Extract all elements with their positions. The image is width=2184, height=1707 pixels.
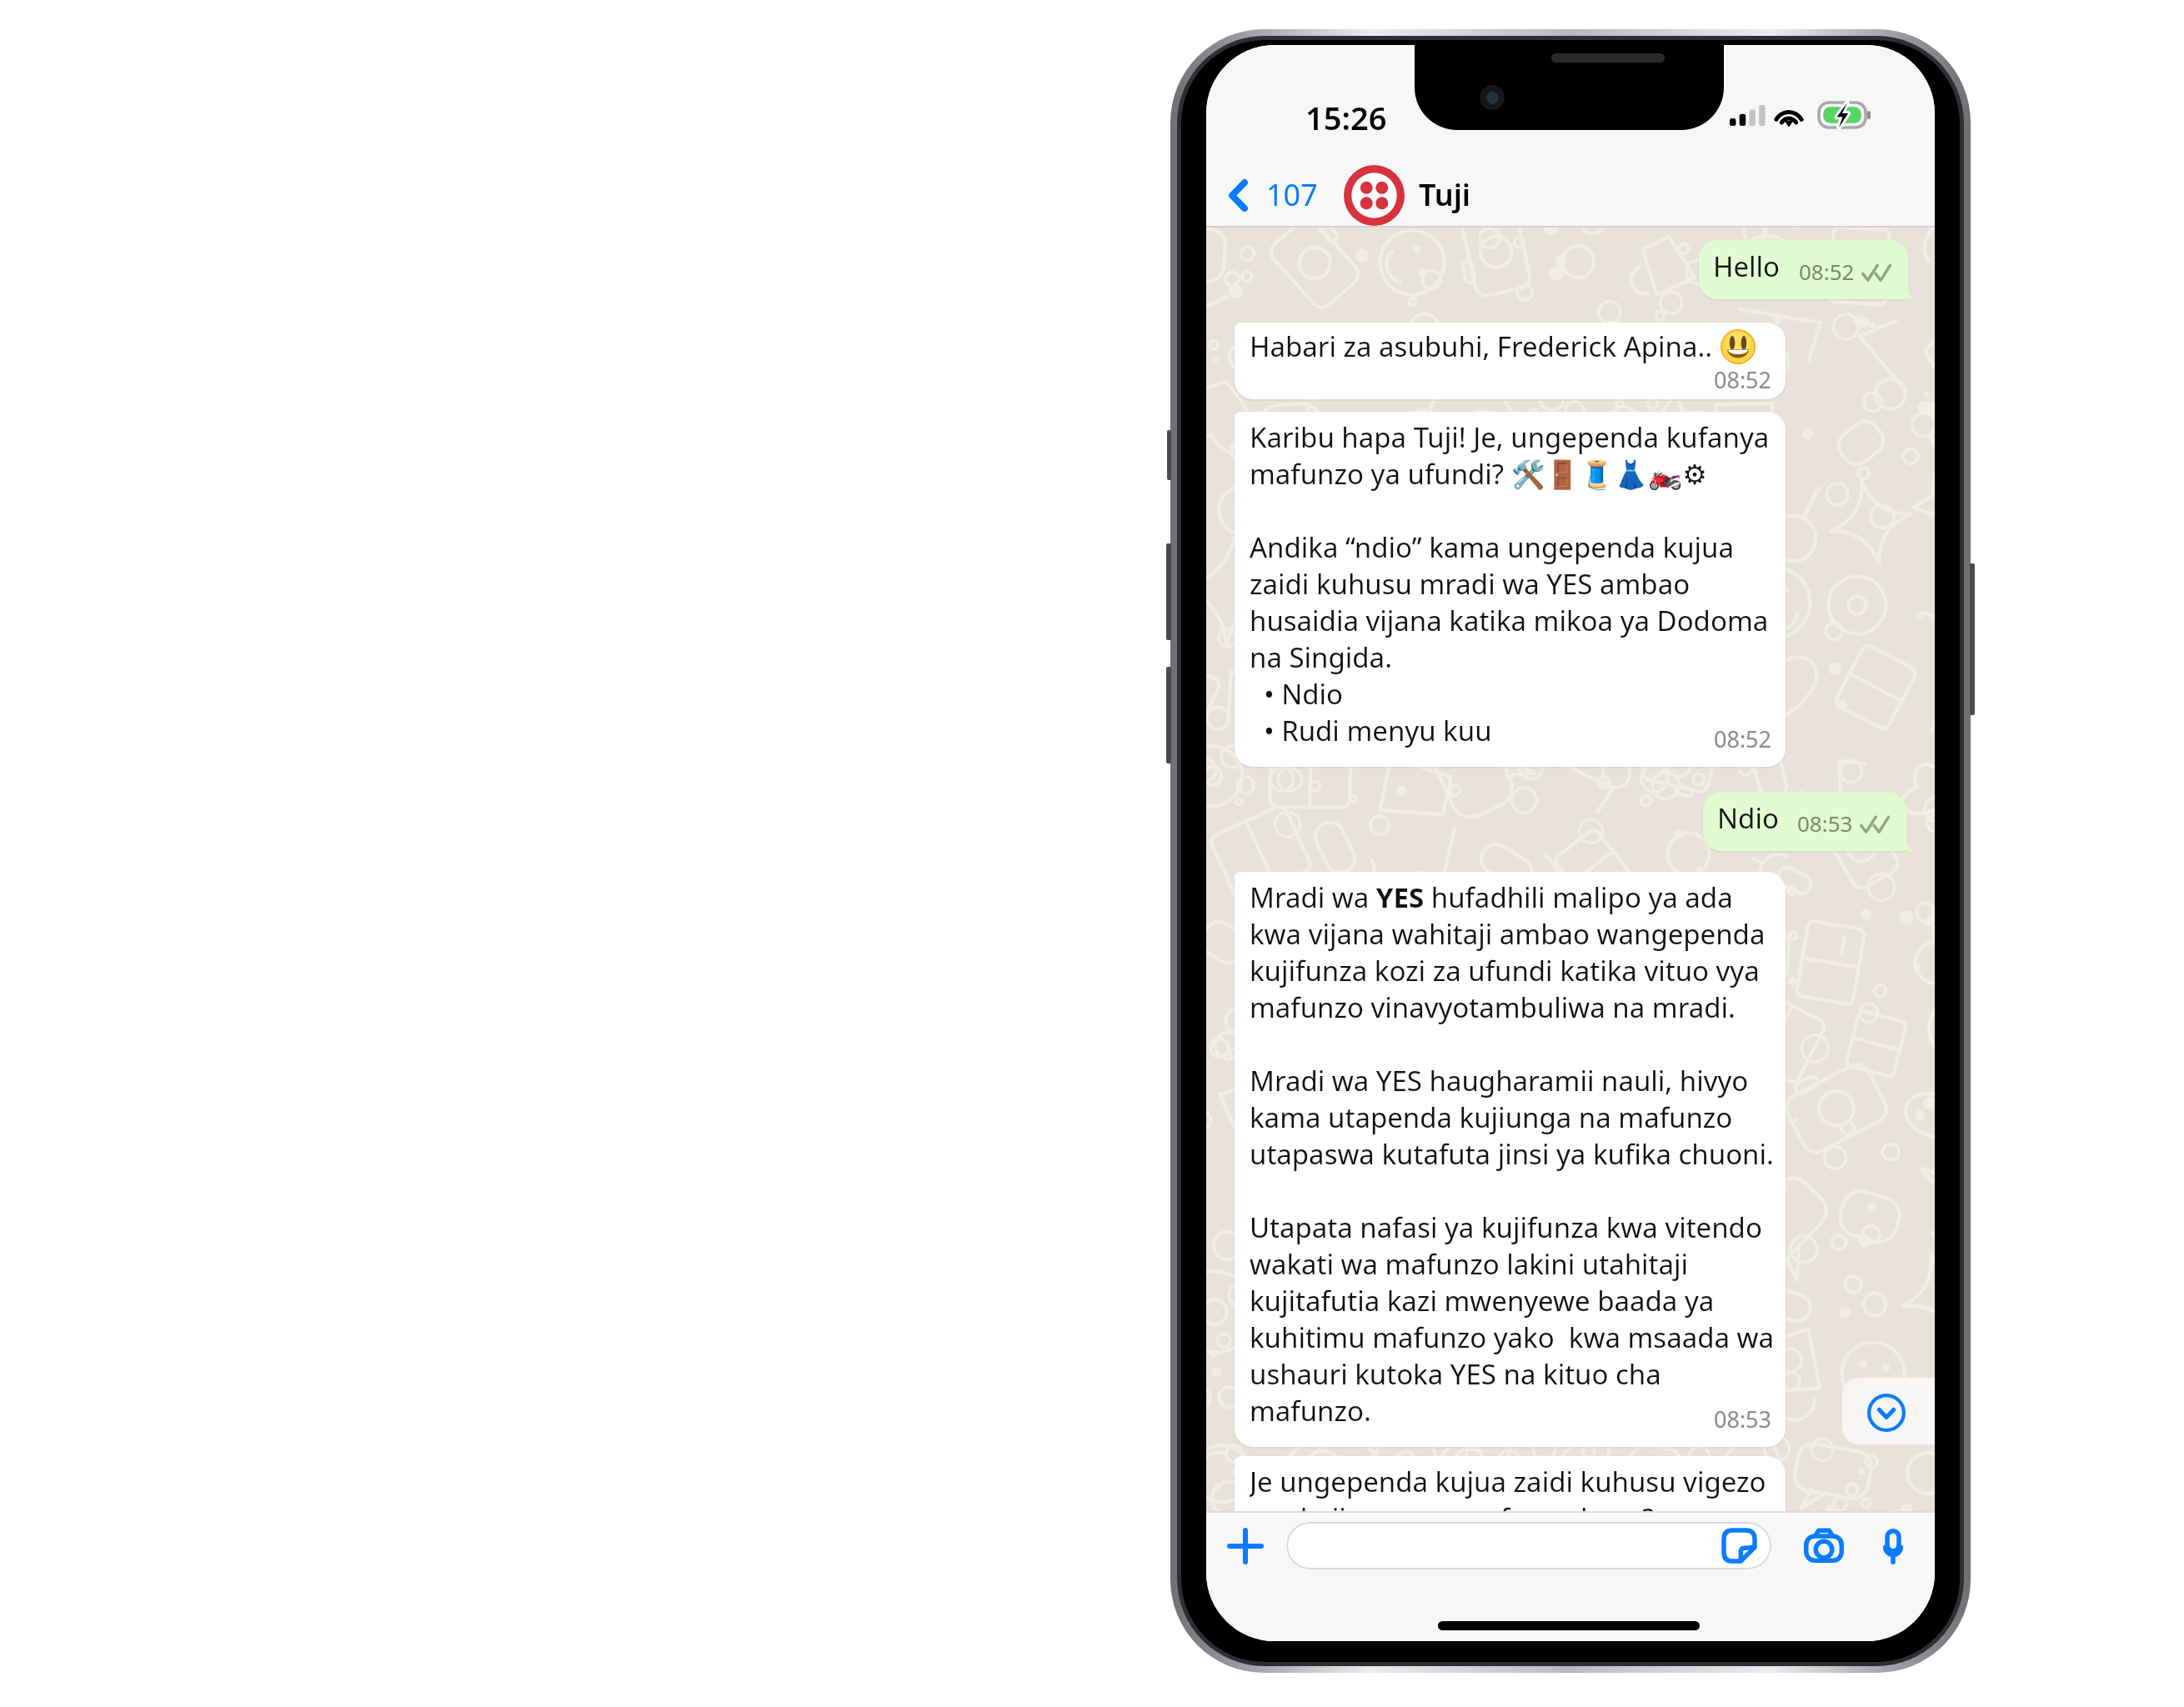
staticText: Mradi wa YES hufadhili malipo ya ada (1250, 879, 1733, 915)
staticText: Andika “ndio” kama ungependa kujua (1250, 528, 1735, 565)
button[interactable]: Mradi wa YES hufadhili malipo ya ada (1235, 872, 1786, 1447)
staticText: • Rudi menyu kuu (1250, 712, 1492, 748)
button[interactable]: Tuji (1340, 161, 1486, 229)
staticText: mafunzo ya ufundi? 🛠️🚪🧵👗🏍️⚙️ (1250, 455, 1707, 492)
staticText: utapaswa kutafuta jinsi ya kufika chuoni… (1250, 1135, 1774, 1172)
staticText: husaidia vijana katika mikoa ya Dodoma (1250, 602, 1769, 638)
staticText: Mradi wa YES haugharamii nauli, hivyo (1250, 1062, 1749, 1099)
staticText: 08:53 (1796, 810, 1852, 839)
button[interactable]: Je ungependa kujua zaidi kuhusu vigezo (1235, 1456, 1786, 1511)
staticText: mafunzo. (1250, 1392, 1371, 1429)
staticText: kujitafutia kazi mwenyewe baada ya (1250, 1282, 1715, 1319)
button[interactable]: Karibu hapa Tuji! Je, ungependa kufanya (1235, 412, 1786, 767)
staticText: ushauri kutoka YES na kituo cha (1250, 1355, 1661, 1392)
staticText: 08:53 (1797, 808, 1853, 838)
staticText: kuhitimu mafunzo yako kwa msaada wa (1250, 1319, 1775, 1355)
staticText: vya kujiunga na mafunzo haya? (1250, 1499, 1655, 1511)
button[interactable]: Scroll to bottom (1842, 1378, 1935, 1444)
staticText: Ndio (1717, 799, 1779, 837)
button[interactable]: Ndio (1703, 792, 1906, 851)
staticText: kama utapenda kujiunga na mafunzo (1250, 1099, 1733, 1135)
staticText: mafunzo vinavyotambuliwa na mradi. (1250, 989, 1736, 1025)
button[interactable]: 107 (1216, 172, 1328, 218)
button[interactable]: Voice message (1866, 1523, 1920, 1569)
button[interactable]: Camera (1791, 1525, 1856, 1567)
staticText: na Singida. (1250, 638, 1392, 675)
staticText: • Ndio (1250, 675, 1344, 712)
staticText: kwa vijana wahitaji ambao wangependa (1250, 915, 1766, 952)
staticText: Habari za asubuhi, Frederick Apina.. (1250, 328, 1734, 364)
staticText: Utapata nafasi ya kujifunza kwa vitendo (1250, 1209, 1762, 1245)
staticText: Karibu hapa Tuji! Je, ungependa kufanya (1250, 418, 1770, 455)
staticText: 08:52 (1714, 723, 1772, 754)
staticText: 08:53 (1714, 1404, 1772, 1434)
staticText: wakati wa mafunzo lakini utahitaji (1250, 1245, 1689, 1282)
staticText: Tuji (1419, 174, 1471, 215)
staticText: Ndio (1716, 801, 1778, 838)
button[interactable] (1286, 1522, 1771, 1569)
staticText: zaidi kuhusu mradi wa YES ambao (1250, 565, 1691, 602)
button[interactable]: Hello (1699, 240, 1908, 299)
staticText: 107 (1266, 174, 1318, 215)
staticText: Hello (1713, 248, 1781, 285)
staticText: 08:52 (1714, 364, 1772, 394)
staticText: 15:26 (1305, 96, 1387, 139)
staticText: Je ungependa kujua zaidi kuhusu vigezo (1250, 1463, 1766, 1499)
staticText: 08:52 (1798, 258, 1854, 288)
staticText: Hello (1712, 249, 1780, 287)
staticText: 08:52 (1799, 257, 1855, 286)
button[interactable]: Habari za asubuhi, Frederick Apina.. (1235, 323, 1786, 399)
staticText: kujifunza kozi za ufundi katika vituo vy… (1250, 952, 1760, 989)
button[interactable]: Attach (1220, 1521, 1270, 1571)
